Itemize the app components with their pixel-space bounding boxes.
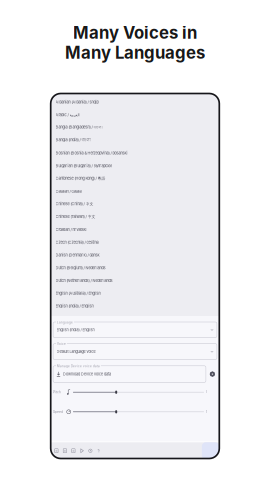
staticText: English (Australia) / English xyxy=(55,291,100,296)
staticText: Speed xyxy=(53,410,63,414)
button[interactable]: Arabic / العربية xyxy=(51,108,219,121)
button[interactable]: Catalan / català xyxy=(51,185,219,198)
button[interactable]: Toolbar action xyxy=(71,448,76,454)
staticText: Catalan / català xyxy=(55,189,81,194)
staticText: Dutch (Netherlands) / Nederlands xyxy=(55,278,112,283)
staticText: English (India) / English xyxy=(55,304,93,308)
button[interactable]: Dutch (Netherlands) / Nederlands xyxy=(51,274,219,287)
staticText: Pitch xyxy=(53,390,61,394)
button[interactable]: Speak xyxy=(202,442,219,459)
staticText: Bulgarian (Bulgaria) / български xyxy=(55,163,111,168)
button[interactable]: English (Australia) / English xyxy=(51,287,219,300)
button[interactable]: Cantonese (Hong Kong) / 粵語 xyxy=(51,172,219,185)
staticText: Czech (Czechia) / čeština xyxy=(55,240,98,245)
staticText: Cantonese (Hong Kong) / 粵語 xyxy=(55,176,105,181)
staticText: Danish (Denmark) / dansk xyxy=(55,253,99,257)
staticText: English (India) / English xyxy=(56,328,94,332)
button[interactable]: Toolbar action xyxy=(88,448,93,454)
button[interactable]: Danish (Denmark) / dansk xyxy=(51,249,219,261)
staticText: Language xyxy=(57,321,73,324)
button[interactable]: Toolbar action xyxy=(96,448,101,454)
staticText: Chinese (Taiwan) / 中文 xyxy=(55,214,95,219)
staticText: Voice xyxy=(57,342,66,346)
staticText: Manage Device voice data xyxy=(57,365,100,368)
staticText: Croatian / hrvatski xyxy=(55,227,86,232)
staticText: Many Voices in xyxy=(73,22,197,43)
staticText: Bangla (India) / বাংলা xyxy=(55,137,90,143)
button[interactable]: Toolbar action xyxy=(62,448,67,454)
button[interactable]: Bangla (India) / বাংলা xyxy=(51,134,219,147)
button[interactable]: Dutch (Belgium) / Nederlands xyxy=(51,261,219,274)
button[interactable]: Chinese (Taiwan) / 中文 xyxy=(51,210,219,223)
button[interactable]: Download Device voice data xyxy=(53,366,206,382)
staticText: Download Device voice data xyxy=(63,372,111,376)
button[interactable]: Toolbar action xyxy=(79,448,84,454)
button[interactable]: Bulgarian (Bulgaria) / български xyxy=(51,159,219,172)
button[interactable]: Default Language voice xyxy=(53,344,217,360)
button[interactable]: Toolbar action xyxy=(54,448,59,454)
button[interactable]: Chinese (China) / 中文 xyxy=(51,198,219,210)
button[interactable]: English (India) / English xyxy=(53,322,217,338)
button[interactable]: Bosnian (Bosnia & Herzegovina) / bosansk… xyxy=(51,147,219,159)
staticText: Chinese (China) / 中文 xyxy=(55,201,93,206)
button[interactable]: English (India) / English xyxy=(51,300,219,312)
staticText: Many Languages xyxy=(65,43,205,63)
staticText: Dutch (Belgium) / Nederlands xyxy=(55,265,105,270)
staticText: Bosnian (Bosnia & Herzegovina) / bosansk… xyxy=(55,151,127,155)
staticText: Arabic / العربية xyxy=(55,112,79,117)
staticText: Default Language voice xyxy=(56,349,95,354)
button[interactable]: Bangla (Bangladesh) / বাংলা xyxy=(51,121,219,134)
button[interactable]: Albanian (Albania) / shqip xyxy=(51,96,219,108)
button[interactable]: Croatian / hrvatski xyxy=(51,223,219,236)
staticText: Albanian (Albania) / shqip xyxy=(55,100,98,104)
staticText: Bangla (Bangladesh) / বাংলা xyxy=(55,125,102,130)
button[interactable]: Czech (Czechia) / čeština xyxy=(51,236,219,249)
button[interactable]: Voice data settings xyxy=(208,366,217,382)
